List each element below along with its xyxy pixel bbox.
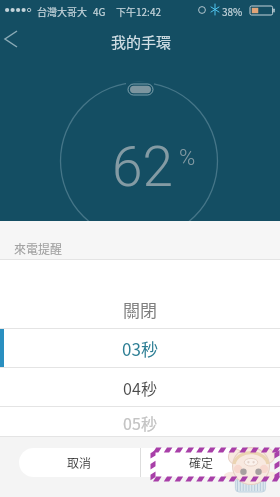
staticText: 來電提醒 bbox=[14, 240, 63, 257]
staticText: 05秒 bbox=[123, 411, 157, 434]
button[interactable]: 取消 bbox=[19, 448, 140, 477]
button[interactable]: 03秒 bbox=[0, 329, 280, 368]
button[interactable]: Back bbox=[0, 20, 30, 57]
staticText: 下午12:42 bbox=[116, 4, 161, 18]
button[interactable]: 04秒 bbox=[0, 368, 280, 407]
staticText: 取消 bbox=[67, 454, 92, 471]
button[interactable]: 關閉 bbox=[0, 290, 280, 329]
staticText: 台灣大哥大 bbox=[37, 4, 87, 18]
staticText: 關閉 bbox=[123, 297, 157, 322]
button[interactable]: 05秒 bbox=[0, 407, 280, 437]
staticText: % bbox=[179, 145, 196, 171]
button[interactable]: 確定 bbox=[141, 448, 261, 477]
staticText: 62 bbox=[112, 135, 174, 199]
staticText: 確定 bbox=[189, 454, 214, 471]
staticText: 4G bbox=[93, 4, 106, 18]
staticText: 03秒 bbox=[122, 336, 158, 361]
staticText: 38% bbox=[222, 4, 243, 18]
staticText: 04秒 bbox=[123, 376, 157, 399]
staticText: 我的手環 bbox=[111, 31, 172, 53]
